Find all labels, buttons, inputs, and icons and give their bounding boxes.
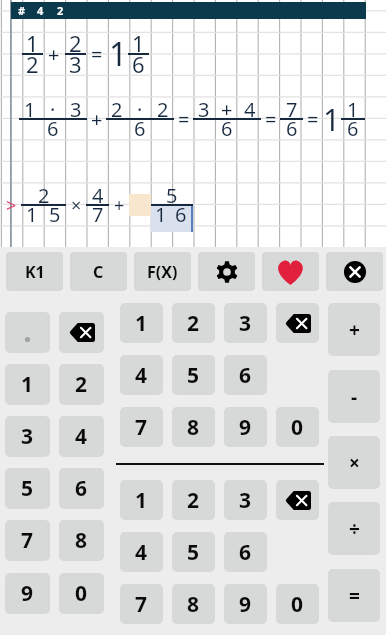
button[interactable]: 7 — [5, 520, 50, 561]
button[interactable]: 5 — [5, 468, 50, 509]
staticText: 7 — [21, 526, 34, 555]
staticText: 1 — [323, 99, 341, 140]
staticText: + — [349, 317, 360, 343]
staticText: 1 — [109, 32, 128, 76]
staticText: 1 — [21, 370, 34, 399]
staticText: 5 — [21, 474, 34, 503]
button[interactable]: 2 — [59, 364, 104, 405]
staticText: 4 — [135, 538, 148, 567]
button[interactable]: 6 — [224, 355, 267, 395]
staticText: 6 — [221, 115, 233, 141]
button[interactable]: 5 — [172, 532, 215, 572]
button[interactable]: 0 — [276, 584, 319, 624]
button[interactable]: Backspace — [59, 312, 104, 353]
button[interactable]: 8 — [59, 520, 104, 561]
staticText: 9 — [21, 579, 34, 608]
staticText: 1 — [135, 309, 148, 338]
button[interactable]: 2 — [172, 303, 215, 343]
button[interactable]: Minus — [328, 370, 380, 423]
staticText: 5 — [187, 538, 200, 567]
staticText: 6 — [47, 115, 59, 141]
staticText: + — [91, 106, 103, 133]
staticText: 6 — [239, 538, 252, 567]
button[interactable]: C — [70, 252, 127, 291]
button[interactable]: Backspace — [276, 480, 319, 520]
button[interactable]: 6 — [59, 468, 104, 509]
staticText: C — [93, 261, 104, 283]
button[interactable]: Decimal point — [5, 312, 50, 353]
staticText: + — [114, 193, 125, 218]
staticText: 8 — [75, 526, 88, 555]
staticText: + — [48, 41, 60, 68]
button[interactable]: 3 — [224, 480, 267, 520]
button[interactable]: Multiply — [328, 436, 380, 489]
button[interactable]: 9 — [224, 407, 267, 447]
staticText: · — [50, 96, 56, 122]
button[interactable]: Plus — [328, 303, 380, 356]
button[interactable]: 1 — [5, 364, 50, 405]
button[interactable]: 8 — [172, 584, 215, 624]
button[interactable]: 4 — [120, 532, 163, 572]
staticText: 4 — [37, 3, 44, 18]
button[interactable]: 3 — [5, 416, 50, 457]
staticText: F(X) — [147, 261, 178, 283]
button[interactable]: 4 — [59, 416, 104, 457]
staticText: 6 — [239, 361, 252, 390]
staticText: 0 — [291, 413, 304, 442]
button[interactable]: Favorite — [262, 252, 319, 291]
button[interactable]: 7 — [120, 407, 163, 447]
staticText: 3 — [239, 486, 252, 515]
button[interactable]: 5 — [172, 355, 215, 395]
staticText: - — [351, 384, 358, 410]
staticText: 1 — [135, 486, 148, 515]
staticText: 2 — [187, 309, 200, 338]
staticText: 2 — [57, 3, 64, 18]
button[interactable]: Close — [326, 252, 383, 291]
staticText: = — [178, 106, 190, 133]
staticText: 6 — [75, 474, 88, 503]
staticText: 2 — [111, 96, 123, 122]
button[interactable]: 6 — [224, 532, 267, 572]
staticText: 8 — [187, 413, 200, 442]
button[interactable]: 9 — [5, 573, 50, 614]
button[interactable]: Backspace — [276, 303, 319, 343]
staticText: · — [137, 96, 143, 122]
button[interactable]: 1 — [120, 480, 163, 520]
staticText: 7 — [135, 413, 148, 442]
button[interactable]: 0 — [59, 573, 104, 614]
button[interactable]: 4 — [120, 355, 163, 395]
staticText: 3 — [69, 49, 82, 78]
staticText: 4 — [92, 182, 104, 208]
button[interactable]: 7 — [120, 584, 163, 624]
button[interactable]: 1 — [120, 303, 163, 343]
staticText: 7 — [135, 590, 148, 619]
staticText: 3 — [198, 96, 210, 122]
button[interactable]: 0 — [276, 407, 319, 447]
staticText: 3 — [21, 422, 34, 451]
staticText: = — [91, 41, 103, 68]
staticText: 4 — [135, 361, 148, 390]
button[interactable]: 8 — [172, 407, 215, 447]
staticText: 6 — [347, 115, 359, 141]
staticText: × — [349, 450, 360, 476]
staticText: 2 — [38, 182, 50, 208]
staticText: 0 — [291, 590, 304, 619]
staticText: 7 — [92, 201, 104, 227]
button[interactable]: Divide — [328, 502, 380, 555]
staticText: 4 — [244, 96, 256, 122]
staticText: 3 — [70, 96, 82, 122]
button[interactable]: 9 — [224, 584, 267, 624]
staticText: 5 — [187, 361, 200, 390]
staticText: 1 — [132, 28, 145, 57]
button[interactable]: K1 — [6, 252, 63, 291]
button[interactable]: 3 — [224, 303, 267, 343]
staticText: > — [6, 193, 17, 218]
button[interactable]: # — [11, 2, 366, 19]
staticText: 5 — [49, 201, 61, 227]
button[interactable]: F(X) — [134, 252, 191, 291]
staticText: 9 — [239, 413, 252, 442]
button[interactable]: Settings — [198, 252, 255, 291]
button[interactable]: Equals — [328, 569, 380, 622]
staticText: ÷ — [349, 516, 360, 542]
button[interactable]: 2 — [172, 480, 215, 520]
